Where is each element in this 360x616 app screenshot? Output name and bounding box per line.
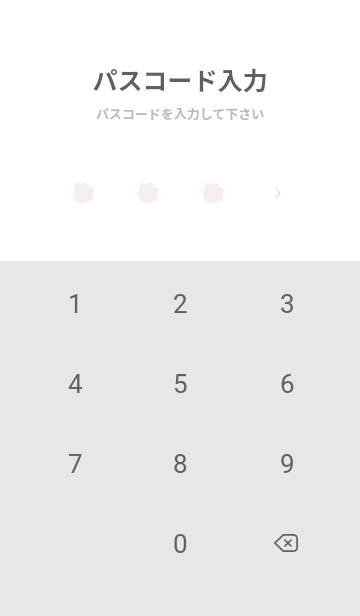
staticText: 0 xyxy=(173,529,188,559)
staticText: 2 xyxy=(173,289,188,319)
button[interactable]: 3 xyxy=(240,261,360,341)
staticText: 7 xyxy=(68,449,83,479)
button[interactable]: 6 xyxy=(240,341,360,421)
staticText: 3 xyxy=(280,289,295,319)
staticText: パスコード入力 xyxy=(0,61,360,97)
staticText: パスコードを入力して下さい xyxy=(0,104,360,123)
button[interactable]: 2 xyxy=(120,261,240,341)
button[interactable]: 1 xyxy=(0,261,120,341)
button[interactable]: 0 xyxy=(120,501,240,581)
button[interactable]: 7 xyxy=(0,421,120,501)
button[interactable]: 8 xyxy=(120,421,240,501)
button[interactable]: 9 xyxy=(240,421,360,501)
button[interactable]: 5 xyxy=(120,341,240,421)
staticText: 9 xyxy=(280,449,295,479)
staticText: 6 xyxy=(280,369,295,399)
staticText: 5 xyxy=(173,369,188,399)
staticText: 8 xyxy=(173,449,188,479)
staticText: 4 xyxy=(68,369,83,399)
other: Backspace xyxy=(274,534,298,552)
staticText: 1 xyxy=(68,289,83,319)
button[interactable]: 4 xyxy=(0,341,120,421)
button[interactable]: Backspace xyxy=(240,501,360,581)
